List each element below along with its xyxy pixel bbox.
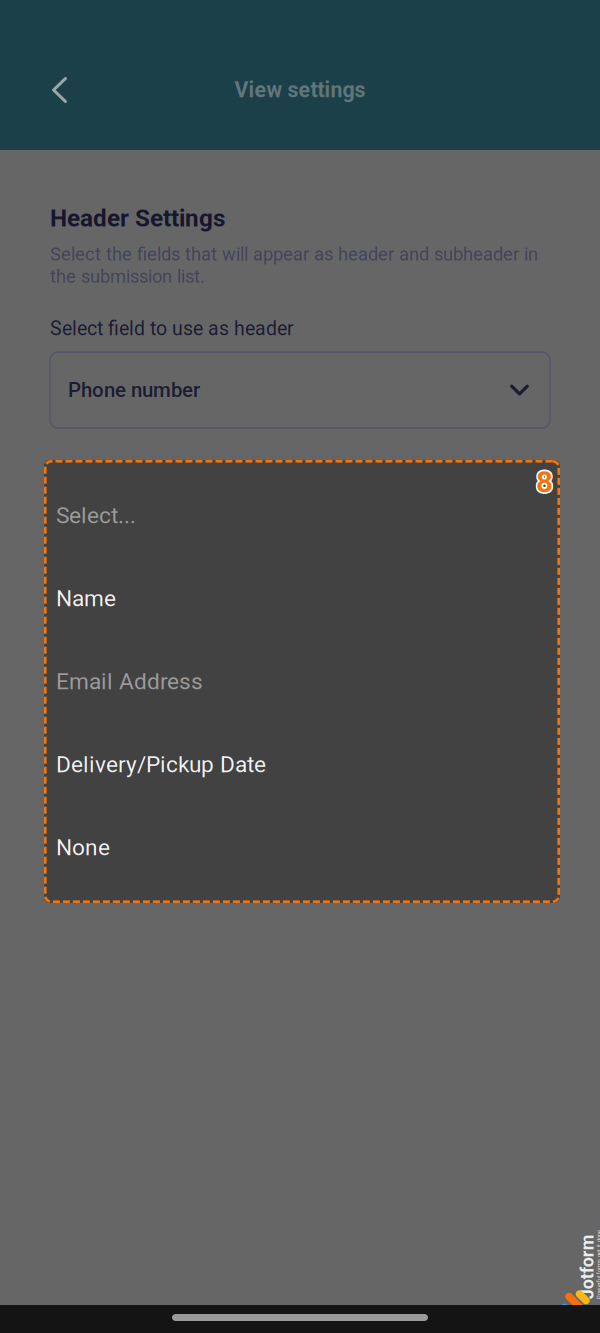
staticText: 8 (537, 466, 554, 501)
staticText: None (56, 834, 110, 861)
staticText: Select field to use as header (50, 317, 294, 340)
staticText: 8 (536, 467, 553, 501)
staticText: View settings (234, 77, 365, 102)
staticText: Phone number (68, 378, 200, 402)
staticText: 8 (537, 464, 554, 498)
staticText: Select the fields that will appear as he… (50, 243, 538, 287)
staticText: 8 (538, 465, 555, 499)
staticText: 8 (535, 466, 552, 501)
button[interactable]: Back (31, 61, 87, 119)
button[interactable]: Email Address (44, 640, 560, 723)
staticText: 8 (536, 463, 553, 498)
staticText: Name (56, 585, 116, 612)
button[interactable]: Delivery/Pickup Date (44, 723, 560, 806)
staticText: Jotform (555, 1252, 600, 1273)
staticText: Header Settings (50, 204, 225, 232)
button[interactable]: None (44, 806, 560, 889)
staticText: 8 (535, 464, 552, 498)
button[interactable]: Select... (44, 474, 560, 557)
staticText: Delivery/Pickup Date (56, 751, 266, 778)
staticText: Powerful forms get it done (555, 1270, 600, 1277)
staticText: 8 (534, 465, 551, 499)
staticText: Email Address (56, 668, 203, 695)
staticText: 8 (536, 465, 553, 499)
button[interactable]: Phone number (50, 352, 550, 428)
staticText: Select... (56, 502, 136, 529)
button[interactable]: Name (44, 557, 560, 640)
